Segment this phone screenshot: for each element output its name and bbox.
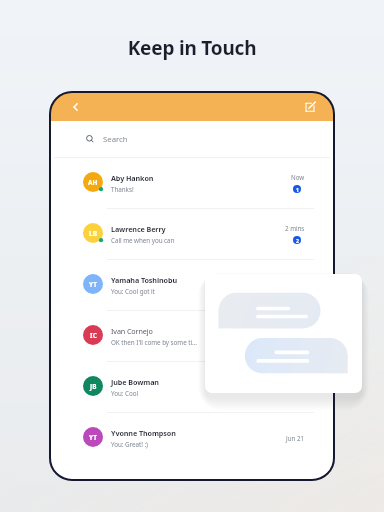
button[interactable] [205, 274, 362, 393]
staticText: You: Great! :) [111, 440, 148, 449]
staticText: YT [89, 280, 97, 289]
staticText: 2 [296, 237, 299, 244]
staticText: 1 [296, 186, 299, 193]
staticText: IC [90, 331, 97, 340]
staticText: Lawrence Berry [111, 224, 166, 234]
staticText: Jun 21 [286, 434, 305, 442]
button[interactable]: YT [50, 260, 334, 311]
button[interactable]: Search [50, 121, 334, 157]
staticText: You: Cool got it [111, 287, 155, 296]
staticText: JB [90, 382, 97, 391]
button[interactable]: IC [50, 311, 334, 362]
staticText: Aby Hankon [111, 173, 154, 183]
button[interactable]: Back [65, 97, 85, 117]
button[interactable]: LB [50, 209, 334, 260]
staticText: Jube Bowman [111, 377, 159, 387]
staticText: Now [291, 173, 305, 181]
staticText: LB [89, 229, 98, 238]
button[interactable]: JB [50, 362, 334, 413]
button[interactable]: Compose new message [302, 98, 320, 116]
staticText: Search [103, 134, 128, 145]
staticText: Yvonne Thompson [111, 428, 176, 438]
staticText: OK then I'll come by some ti... [111, 338, 197, 347]
staticText: YT [89, 433, 97, 442]
staticText: Ivan Cornejo [111, 326, 153, 336]
button[interactable]: AH [50, 158, 334, 209]
staticText: Yamaha Toshinobu [111, 275, 177, 285]
staticText: Keep in Touch [0, 35, 384, 61]
staticText: 2 mins [285, 224, 305, 232]
staticText: AH [88, 178, 98, 187]
staticText: Call me when you can [111, 236, 175, 245]
staticText: You: Cool [111, 389, 139, 398]
other: Search [84, 133, 96, 145]
button[interactable]: YT [50, 413, 334, 464]
staticText: Thanks! [111, 185, 134, 194]
